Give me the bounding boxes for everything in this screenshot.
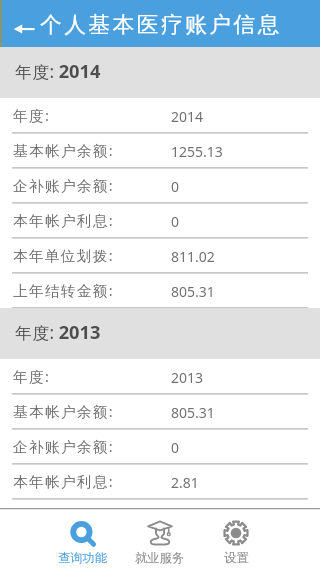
button[interactable]: 设置 [198, 508, 274, 568]
button[interactable]: 本年帐户利息: [0, 464, 320, 499]
staticText: 基本帐户余额: [13, 140, 171, 160]
staticText: 个人基本医疗账户信息 [40, 11, 282, 38]
staticText: 2014 [171, 107, 204, 126]
button[interactable]: 本年单位划拨: [0, 238, 320, 273]
staticText: 就业服务 [135, 550, 185, 565]
button[interactable]: 基本帐户余额: [0, 133, 320, 168]
staticText: 查询功能 [58, 550, 108, 565]
staticText: 企补账户余额: [13, 436, 171, 456]
button[interactable]: 企补账户余额: [0, 429, 320, 464]
staticText: 本年帐户利息: [13, 210, 171, 230]
staticText: 0 [171, 212, 180, 231]
button[interactable]: 年度: [0, 98, 320, 133]
staticText: 基本帐户余额: [13, 401, 171, 421]
staticText: 1255.13 [171, 142, 223, 161]
staticText: 805.31 [171, 403, 215, 422]
staticText: 上年结转金额: [13, 280, 171, 300]
staticText: 年度: 2013 [15, 319, 101, 344]
button[interactable]: 基本帐户余额: [0, 394, 320, 429]
button[interactable]: 就业服务 [122, 508, 198, 568]
staticText: 本年单位划拨: [13, 245, 171, 265]
staticText: 811.02 [171, 247, 215, 266]
staticText: 年度: [13, 366, 171, 386]
staticText: 设置 [224, 550, 249, 565]
staticText: 本年帐户利息: [13, 471, 171, 491]
button[interactable]: 年度: [0, 359, 320, 394]
staticText: 2.81 [171, 473, 199, 492]
staticText: 2013 [171, 368, 204, 387]
button[interactable]: 本年帐户利息: [0, 203, 320, 238]
staticText: 企补账户余额: [13, 175, 171, 195]
staticText: 0 [171, 177, 180, 196]
button[interactable]: Back [0, 0, 40, 47]
staticText: 年度: [13, 105, 171, 125]
button[interactable]: 查询功能 [45, 508, 121, 568]
staticText: 年度: 2014 [15, 58, 101, 83]
button[interactable]: 上年结转金额: [0, 273, 320, 308]
staticText: 805.31 [171, 282, 215, 301]
staticText: 0 [171, 438, 180, 457]
button[interactable]: 企补账户余额: [0, 168, 320, 203]
